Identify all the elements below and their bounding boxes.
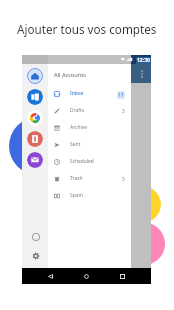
button[interactable]: Recents xyxy=(117,268,128,284)
staticText: 17 xyxy=(118,92,124,99)
staticText: Archive xyxy=(70,124,87,131)
button[interactable]: Account 3 xyxy=(27,110,43,126)
button[interactable]: Account 5 xyxy=(27,152,43,168)
staticText: 3 xyxy=(122,108,125,115)
staticText: All Accounts xyxy=(54,71,86,79)
button[interactable]: Back xyxy=(45,268,56,284)
button[interactable]: Account 1 xyxy=(27,68,43,84)
button[interactable]: Account 4 xyxy=(27,131,43,147)
staticText: 5 xyxy=(122,176,125,183)
staticText: Yesterday xyxy=(29,89,55,96)
button[interactable]: Home xyxy=(81,268,92,284)
staticText: Scheduled xyxy=(70,158,94,165)
button[interactable]: Sent xyxy=(48,136,131,153)
staticText: Spam xyxy=(70,192,84,199)
button[interactable]: Settings xyxy=(29,249,42,262)
button[interactable]: Inbox xyxy=(48,85,131,102)
button[interactable]: All Accounts xyxy=(48,64,131,85)
staticText: Ajouter tous vos comptes xyxy=(17,21,157,37)
button[interactable]: Spam xyxy=(48,187,131,204)
button[interactable]: Drafts xyxy=(48,102,131,119)
staticText: Drafts xyxy=(70,107,85,114)
staticText: Sent xyxy=(70,141,81,148)
staticText: Trash xyxy=(70,175,83,182)
button[interactable]: Scheduled xyxy=(48,153,131,170)
button[interactable]: Trash xyxy=(48,170,131,187)
button[interactable]: Help xyxy=(29,230,42,243)
button[interactable]: Account 2 xyxy=(27,89,43,105)
staticText: Inbox xyxy=(70,90,84,97)
staticText: 12:30 xyxy=(137,57,150,64)
button[interactable]: More options xyxy=(136,68,148,80)
staticText: Laurent xyxy=(29,179,50,186)
button[interactable]: Archive xyxy=(48,119,131,136)
